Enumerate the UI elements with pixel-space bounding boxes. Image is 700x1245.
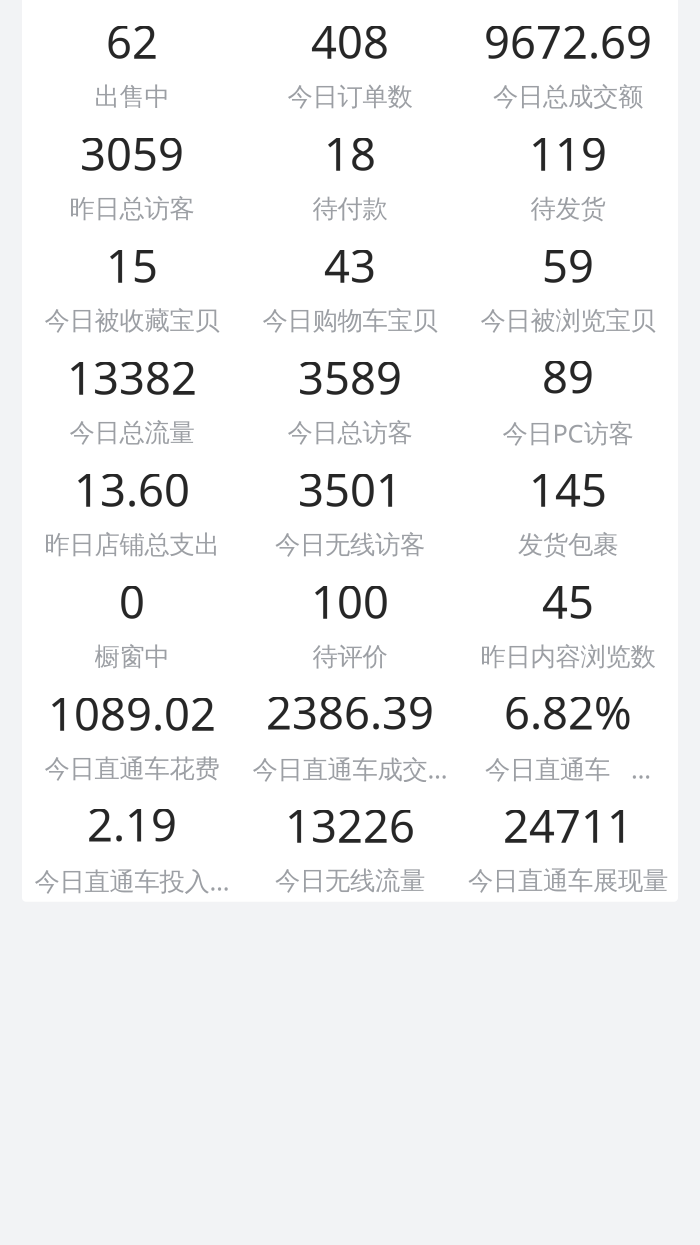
staticText: 3059 xyxy=(80,123,184,183)
staticText: 昨日总访客 xyxy=(69,193,194,224)
button[interactable]: 145 xyxy=(459,454,677,566)
staticText: 89 xyxy=(542,346,594,406)
button[interactable]: 89 xyxy=(459,342,677,454)
staticText: 昨日店铺总支出 xyxy=(44,529,219,560)
staticText: 待付款 xyxy=(312,193,387,224)
staticText: 9672.69 xyxy=(484,11,652,71)
staticText: 119 xyxy=(529,123,607,183)
button[interactable]: 408 xyxy=(241,6,459,118)
staticText: 1089.02 xyxy=(48,683,216,743)
staticText: 6.82% xyxy=(504,682,632,742)
staticText: 今日订单数 xyxy=(287,81,412,112)
button[interactable]: 2.19 xyxy=(23,790,241,902)
staticText: 43 xyxy=(324,235,376,295)
staticText: 今日总访客 xyxy=(287,417,412,448)
button[interactable]: 13382 xyxy=(23,342,241,454)
staticText: 今日总流量 xyxy=(69,417,194,448)
staticText: 18 xyxy=(324,123,376,183)
button[interactable]: 0 xyxy=(23,566,241,678)
staticText: 今日直通车 … xyxy=(485,752,651,786)
button[interactable]: 13226 xyxy=(241,790,459,902)
button[interactable]: 15 xyxy=(23,230,241,342)
staticText: 昨日内容浏览数 xyxy=(480,641,655,672)
button[interactable]: 18 xyxy=(241,118,459,230)
staticText: 100 xyxy=(311,571,389,631)
staticText: 今日直通车成交… xyxy=(252,752,447,786)
staticText: 145 xyxy=(529,459,607,519)
staticText: 出售中 xyxy=(94,81,169,112)
staticText: 0 xyxy=(119,571,145,631)
staticText: 408 xyxy=(311,11,389,71)
button[interactable]: 45 xyxy=(459,566,677,678)
staticText: 13226 xyxy=(285,795,415,855)
button[interactable]: 43 xyxy=(241,230,459,342)
staticText: 今日被浏览宝贝 xyxy=(480,305,655,336)
staticText: 13382 xyxy=(67,347,197,407)
staticText: 今日被收藏宝贝 xyxy=(44,305,219,336)
button[interactable]: 100 xyxy=(241,566,459,678)
button[interactable]: 13.60 xyxy=(23,454,241,566)
staticText: 13.60 xyxy=(74,459,190,519)
staticText: 今日无线访客 xyxy=(275,529,425,560)
staticText: 今日PC访客 xyxy=(502,416,633,450)
staticText: 今日直通车花费 xyxy=(44,753,219,784)
staticText: 今日总成交额 xyxy=(493,81,643,112)
button[interactable]: 2386.39 xyxy=(241,678,459,790)
staticText: 2386.39 xyxy=(266,682,434,742)
staticText: 待评价 xyxy=(312,641,387,672)
button[interactable]: 59 xyxy=(459,230,677,342)
button[interactable]: 1089.02 xyxy=(23,678,241,790)
staticText: 今日直通车投入… xyxy=(34,864,229,898)
staticText: 待发货 xyxy=(530,193,605,224)
button[interactable]: 119 xyxy=(459,118,677,230)
staticText: 45 xyxy=(542,571,594,631)
staticText: 今日无线流量 xyxy=(275,865,425,896)
button[interactable]: 3501 xyxy=(241,454,459,566)
staticText: 今日直通车展现量 xyxy=(468,865,668,896)
button[interactable]: 9672.69 xyxy=(459,6,677,118)
staticText: 62 xyxy=(106,11,158,71)
staticText: 15 xyxy=(106,235,158,295)
staticText: 今日购物车宝贝 xyxy=(262,305,437,336)
button[interactable]: 24711 xyxy=(459,790,677,902)
button[interactable]: 62 xyxy=(23,6,241,118)
staticText: 24711 xyxy=(503,795,633,855)
staticText: 发货包裹 xyxy=(518,529,618,560)
staticText: 3501 xyxy=(298,459,402,519)
button[interactable]: 3059 xyxy=(23,118,241,230)
staticText: 3589 xyxy=(298,347,402,407)
button[interactable]: 3589 xyxy=(241,342,459,454)
staticText: 2.19 xyxy=(87,794,177,854)
staticText: 59 xyxy=(542,235,594,295)
staticText: 橱窗中 xyxy=(94,641,169,672)
button[interactable]: 6.82% xyxy=(459,678,677,790)
